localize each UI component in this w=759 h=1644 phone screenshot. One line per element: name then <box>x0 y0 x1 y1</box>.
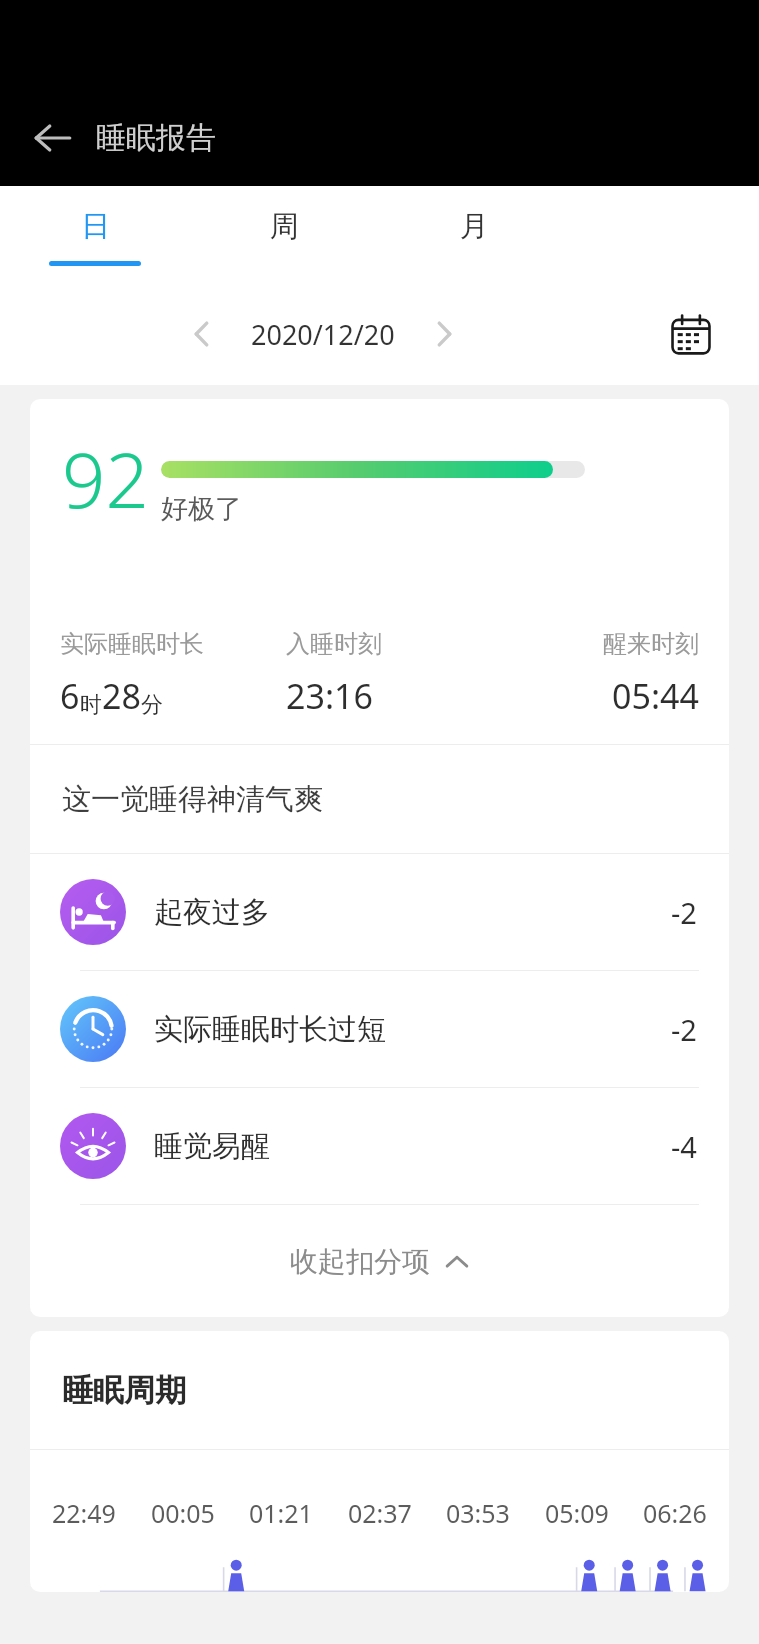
staticText: 日 <box>81 208 110 245</box>
staticText: 时 <box>80 691 102 719</box>
staticText: 03:53 <box>446 1496 510 1530</box>
button[interactable]: 日 <box>0 186 189 266</box>
button[interactable]: Back <box>22 107 84 169</box>
staticText: 睡眠周期 <box>62 1371 186 1410</box>
button[interactable]: Pick date <box>663 306 719 362</box>
staticText: 实际睡眠时长 <box>60 629 204 659</box>
staticText: 00:05 <box>151 1496 215 1530</box>
staticText: 6 <box>60 673 80 719</box>
staticText: 28 <box>102 673 141 719</box>
staticText: 实际睡眠时长过短 <box>154 1011 386 1048</box>
staticText: 02:37 <box>348 1496 412 1530</box>
staticText: 入睡时刻 <box>286 629 382 659</box>
staticText: -4 <box>671 1127 697 1166</box>
button[interactable]: Previous day <box>176 308 228 360</box>
staticText: 92 <box>62 427 149 531</box>
staticText: -2 <box>671 1010 697 1049</box>
button[interactable]: Next day <box>418 308 470 360</box>
staticText: 醒来时刻 <box>603 629 699 659</box>
staticText: -2 <box>671 893 697 932</box>
staticText: 起夜过多 <box>154 894 270 931</box>
staticText: 23:16 <box>286 673 373 719</box>
staticText: 这一觉睡得神清气爽 <box>62 781 323 818</box>
staticText: 01:21 <box>249 1496 313 1530</box>
button[interactable]: 起夜过多 <box>30 854 729 970</box>
button[interactable]: 收起扣分项 <box>30 1205 729 1317</box>
button[interactable]: 睡觉易醒 <box>30 1088 729 1204</box>
staticText: 22:49 <box>52 1496 116 1530</box>
staticText: 05:09 <box>545 1496 609 1530</box>
button[interactable]: 实际睡眠时长过短 <box>30 971 729 1087</box>
staticText: 好极了 <box>161 492 242 526</box>
staticText: 收起扣分项 <box>290 1244 430 1279</box>
staticText: 周 <box>270 208 299 245</box>
staticText: 睡眠报告 <box>96 119 216 157</box>
staticText: 05:44 <box>612 673 699 719</box>
button[interactable]: 周 <box>189 186 379 261</box>
staticText: 月 <box>460 208 489 245</box>
staticText: 06:26 <box>643 1496 707 1530</box>
staticText: 分 <box>141 691 163 719</box>
staticText: 睡觉易醒 <box>154 1128 270 1165</box>
button[interactable]: 月 <box>379 186 569 261</box>
staticText: 2020/12/20 <box>251 316 395 353</box>
